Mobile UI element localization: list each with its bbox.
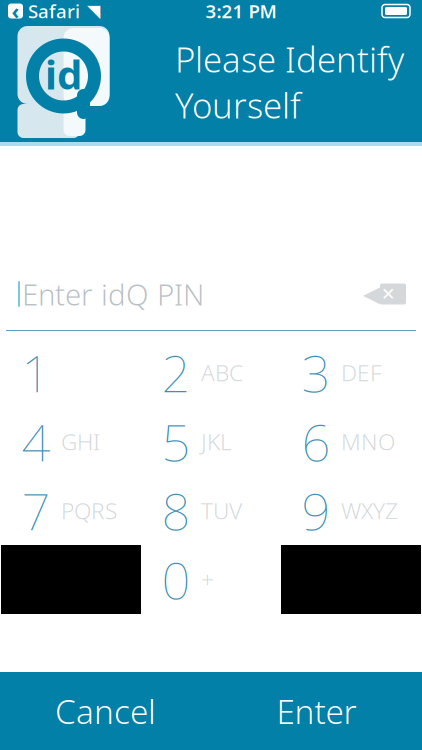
- staticText: PQRS: [61, 495, 117, 525]
- staticText: 5: [161, 408, 190, 475]
- staticText: 7: [21, 477, 50, 544]
- button[interactable]: 5: [141, 407, 281, 476]
- button[interactable]: 3: [281, 338, 421, 407]
- button[interactable]: ‹: [8, 0, 80, 23]
- button[interactable]: 2: [141, 338, 281, 407]
- staticText: ‹: [11, 0, 19, 25]
- staticText: TUV: [201, 495, 242, 525]
- button[interactable]: 0: [141, 545, 281, 614]
- staticText: MNO: [341, 426, 395, 456]
- button[interactable]: Enter: [211, 672, 422, 750]
- button[interactable]: 1: [1, 338, 141, 407]
- staticText: ✕: [381, 284, 396, 304]
- button[interactable]: 9: [281, 476, 421, 545]
- staticText: WXYZ: [341, 495, 398, 525]
- button[interactable]: 8: [141, 476, 281, 545]
- staticText: ◀: [363, 281, 380, 307]
- staticText: 3: [301, 339, 330, 406]
- staticText: Cancel: [55, 689, 156, 733]
- staticText: id: [45, 47, 82, 100]
- staticText: 3:21 PM: [205, 0, 276, 23]
- button[interactable]: 6: [281, 407, 421, 476]
- staticText: 6: [301, 408, 330, 475]
- button[interactable]: 4: [1, 407, 141, 476]
- staticText: Please Identify Yourself: [175, 36, 404, 128]
- staticText: 1: [21, 339, 50, 406]
- staticText: DEF: [341, 357, 381, 387]
- staticText: 0: [161, 546, 190, 613]
- staticText: GHI: [61, 426, 100, 456]
- staticText: 9: [301, 477, 330, 544]
- staticText: Enter: [276, 689, 356, 733]
- staticText: +: [201, 564, 214, 594]
- staticText: ABC: [201, 357, 243, 387]
- button[interactable]: Cancel: [0, 672, 211, 750]
- staticText: 8: [161, 477, 190, 544]
- button[interactable]: 7: [1, 476, 141, 545]
- button[interactable]: Enter idQ PIN: [0, 274, 422, 314]
- staticText: 4: [21, 408, 50, 475]
- staticText: 2: [161, 339, 190, 406]
- staticText: ◥: [87, 1, 100, 21]
- staticText: JKL: [201, 426, 232, 456]
- staticText: Enter idQ PIN: [22, 274, 204, 313]
- staticText: Safari: [28, 0, 80, 23]
